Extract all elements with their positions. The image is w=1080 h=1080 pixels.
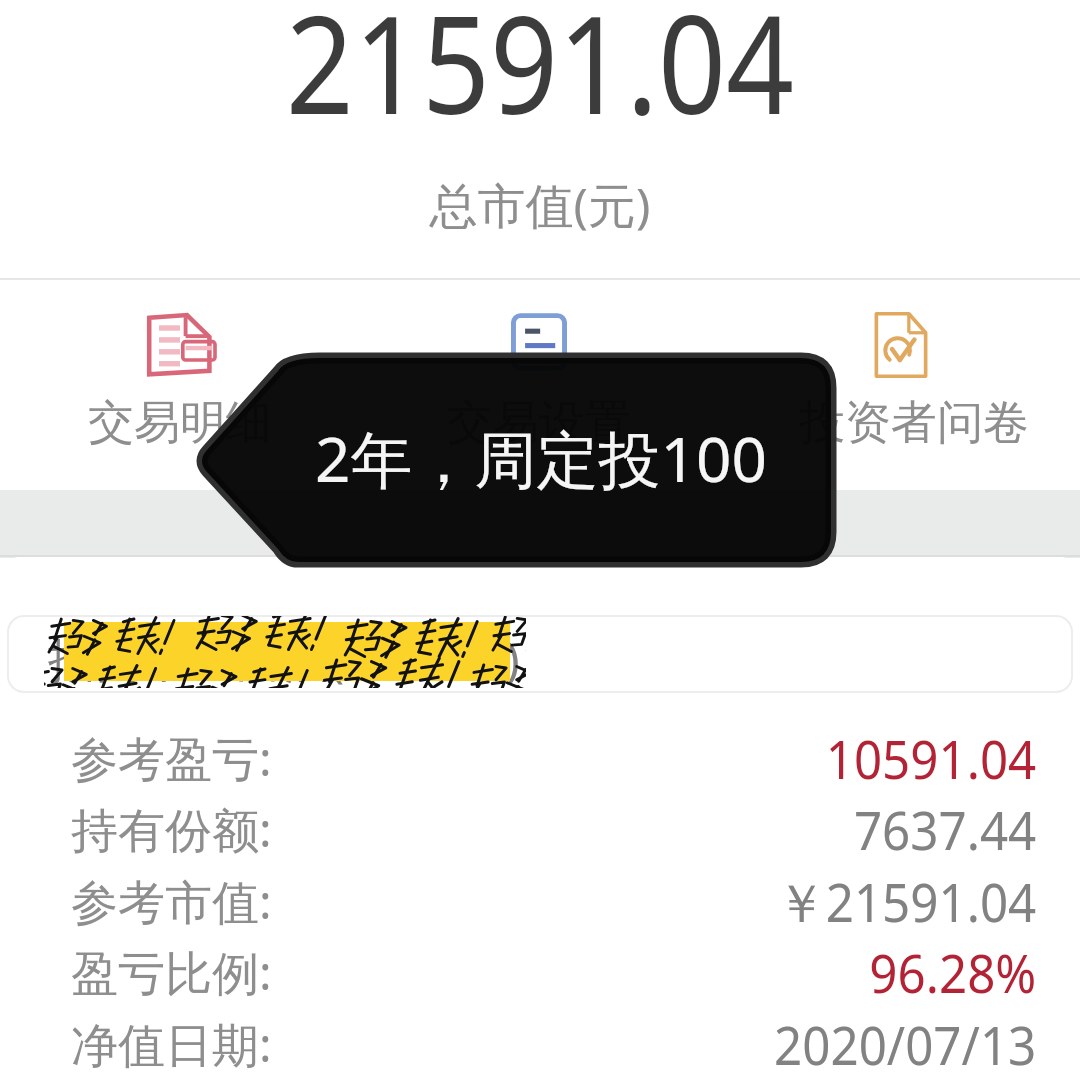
button[interactable]: [0, 789, 1080, 860]
staticText: 2年，周定投100: [315, 416, 767, 501]
button[interactable]: [8, 616, 1072, 692]
staticText: 持有份额:: [71, 797, 272, 861]
staticText: ￥21591.04: [76, 865, 1036, 937]
staticText: 总市值(元): [0, 172, 1080, 238]
staticText: 参考市值:: [71, 869, 272, 933]
staticText: 参考盈亏:: [71, 726, 272, 790]
staticText: 招商中证白酒(161725): [48, 627, 520, 691]
staticText: 投资者问卷: [799, 394, 1029, 452]
staticText: 2020/07/13: [76, 1008, 1036, 1080]
button[interactable]: [781, 299, 1057, 447]
button[interactable]: [429, 300, 657, 448]
staticText: 21591.04: [67, 0, 1012, 154]
button[interactable]: [70, 299, 298, 447]
staticText: 10591.04: [76, 722, 1036, 794]
button[interactable]: [0, 932, 1080, 1003]
button[interactable]: [0, 861, 1080, 932]
button[interactable]: 2年，周定投100: [196, 357, 832, 564]
staticText: 盈亏比例:: [71, 940, 272, 1004]
button[interactable]: [0, 718, 1080, 789]
staticText: 7637.44: [76, 793, 1036, 865]
staticText: 交易设置: [447, 394, 631, 452]
staticText: 交易明细: [88, 394, 272, 452]
staticText: 净值日期:: [71, 1012, 272, 1076]
staticText: 96.28%: [76, 936, 1036, 1008]
button[interactable]: [0, 1004, 1080, 1075]
